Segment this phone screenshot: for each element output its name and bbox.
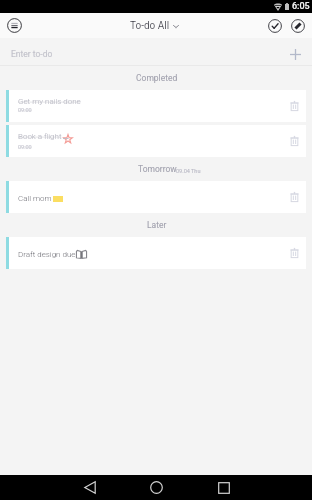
button[interactable]: Enter to-do — [0, 38, 312, 66]
staticText: Book a flight — [18, 132, 62, 141]
button[interactable]: Delete — [285, 97, 303, 115]
button[interactable]: Edit — [287, 13, 309, 38]
staticText: Draft design due — [18, 250, 76, 259]
button[interactable]: Recent apps — [190, 475, 257, 500]
staticText: 09.04 Thu — [176, 168, 201, 174]
staticText: Call mom — [18, 194, 52, 203]
staticText: To-do All — [130, 20, 170, 32]
staticText: 09:00 — [18, 144, 32, 150]
staticText: Completed — [136, 73, 178, 83]
button[interactable]: Call mom — [6, 181, 306, 213]
button[interactable]: Delete — [285, 188, 303, 206]
button[interactable]: Delete — [285, 132, 303, 150]
button[interactable]: Complete all — [263, 13, 287, 38]
staticText: Later — [147, 220, 167, 230]
staticText: 09:00 — [18, 107, 32, 113]
button[interactable]: Menu — [0, 13, 28, 38]
button[interactable]: Add to-do — [288, 47, 302, 61]
button[interactable]: Back — [56, 475, 123, 500]
button[interactable]: To-do All — [130, 20, 179, 32]
button[interactable]: Book a flight — [6, 125, 306, 157]
button[interactable]: Delete — [285, 244, 303, 262]
staticText: Tomorrow — [138, 164, 177, 174]
button[interactable]: Draft design due — [6, 237, 306, 269]
button[interactable]: Get my nails done — [6, 90, 306, 122]
staticText: 6:05 — [292, 1, 310, 12]
staticText: Enter to-do — [11, 49, 53, 59]
staticText: Get my nails done — [18, 97, 81, 106]
button[interactable]: Home — [123, 475, 190, 500]
